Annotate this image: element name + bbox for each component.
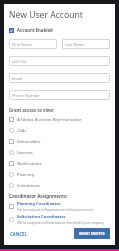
button[interactable]: Account Enabled	[9, 27, 110, 33]
staticText: Job Title	[12, 59, 27, 64]
staticText: CSAs	[17, 128, 27, 134]
staticText: Last Name	[65, 42, 85, 47]
staticText: Account Enabled	[17, 27, 53, 33]
staticText: All Areas Business Representative	[17, 117, 82, 123]
staticText: Solicitations	[17, 183, 41, 189]
staticText: New User Account	[9, 9, 83, 21]
staticText: Solicitation Coordinator	[17, 214, 66, 220]
button[interactable]: Planning	[9, 169, 110, 180]
button[interactable]: Last Name	[62, 39, 110, 49]
button[interactable]: All Areas Business Representative	[9, 114, 110, 125]
button[interactable]: Invoices	[9, 147, 110, 158]
button[interactable]: Deliverables	[9, 136, 110, 147]
button[interactable]: SEND INVITE	[74, 228, 110, 239]
button[interactable]: Job Title	[9, 56, 110, 66]
staticText: Planning	[17, 172, 34, 178]
button[interactable]: Solicitation Coordinator	[9, 213, 110, 226]
button[interactable]: Phone Number	[9, 90, 110, 100]
button[interactable]: First Name	[9, 39, 57, 49]
staticText: Planning Coordinator	[17, 201, 61, 207]
button[interactable]: Planning Coordinator	[9, 200, 110, 213]
button[interactable]: CANCEL	[9, 229, 28, 239]
button[interactable]: Email	[9, 73, 110, 83]
staticText: CANCEL	[10, 231, 27, 237]
staticText: Grant access to view:	[9, 107, 55, 113]
button[interactable]: Solicitations	[9, 180, 110, 191]
staticText: Phone Number	[12, 93, 40, 98]
staticText: Coordinator Assignments:	[9, 193, 68, 199]
staticText: SEND INVITE	[79, 231, 105, 237]
staticText: Can be assigned to Requirements in this …	[17, 208, 93, 212]
staticText: First Name	[12, 42, 32, 47]
staticText: Invoices	[17, 150, 33, 156]
staticText: Deliverables	[17, 139, 41, 145]
button[interactable]: Notifications	[9, 158, 110, 169]
button[interactable]: CSAs	[9, 125, 110, 136]
staticText: Will be assigned to all Solicitations sh…	[17, 221, 104, 225]
staticText: Email	[12, 76, 22, 81]
staticText: Notifications	[17, 161, 42, 167]
